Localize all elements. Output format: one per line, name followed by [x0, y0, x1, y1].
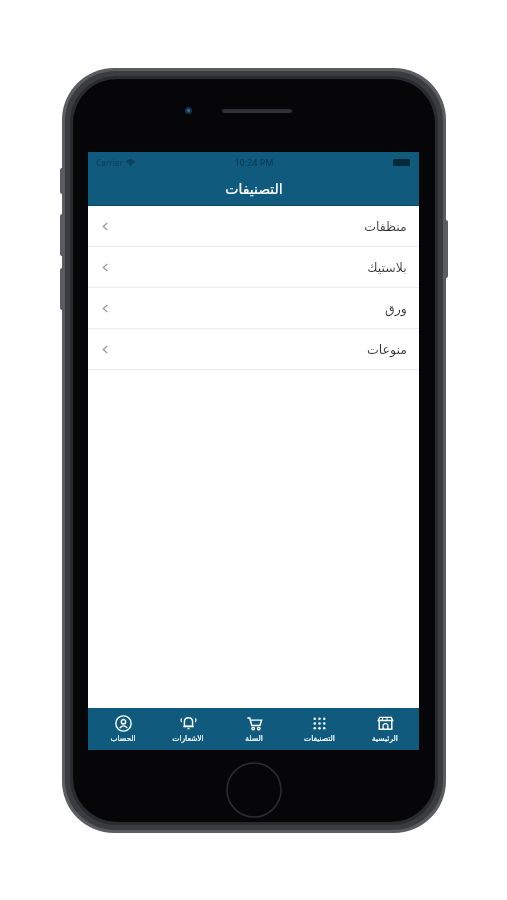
button[interactable]: Categories: [288, 708, 350, 750]
button[interactable]: Account: [92, 708, 154, 750]
button[interactable]: منظفات: [88, 206, 419, 246]
staticText: ورق: [385, 301, 407, 316]
button[interactable]: Notifications: [157, 708, 219, 750]
staticText: Carrier: [96, 157, 123, 168]
staticText: التصنيفات: [225, 181, 283, 197]
staticText: بلاستيك: [367, 260, 407, 275]
button[interactable]: منوعات: [88, 329, 419, 369]
button[interactable]: ورق: [88, 288, 419, 328]
staticText: الاشعارات: [172, 734, 204, 743]
staticText: الحساب: [110, 734, 136, 743]
button[interactable]: Cart: [223, 708, 285, 750]
staticText: الرئيسية: [372, 734, 398, 743]
button[interactable]: بلاستيك: [88, 247, 419, 287]
staticText: منظفات: [364, 219, 407, 234]
staticText: التصنيفات: [304, 734, 335, 743]
staticText: 10:24 PM: [234, 156, 274, 168]
staticText: السلة: [245, 734, 263, 743]
button[interactable]: Home: [354, 708, 416, 750]
staticText: منوعات: [367, 342, 407, 357]
